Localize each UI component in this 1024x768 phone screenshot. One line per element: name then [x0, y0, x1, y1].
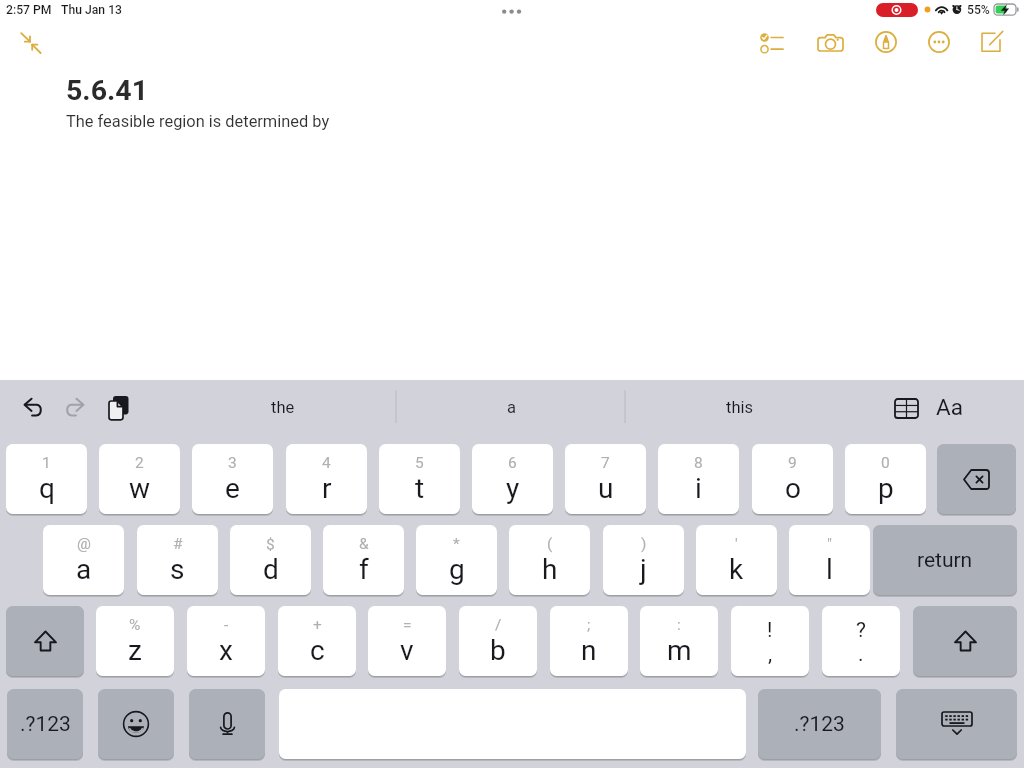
button[interactable]: Redo [59, 390, 90, 424]
button[interactable]: n [550, 606, 628, 676]
staticText: ; [587, 616, 591, 634]
button[interactable]: f [323, 525, 404, 595]
button[interactable]: h [509, 525, 590, 595]
button[interactable]: w [99, 444, 180, 514]
staticText: $ [266, 535, 275, 553]
staticText: t [415, 472, 425, 505]
button[interactable]: Camera [813, 26, 847, 58]
button[interactable]: q [6, 444, 87, 514]
staticText: * [453, 535, 460, 553]
staticText: / [495, 616, 502, 634]
staticText: w [129, 472, 151, 505]
button[interactable]: Dictation [189, 689, 265, 759]
staticText: n [581, 634, 597, 667]
button[interactable]: a [43, 525, 124, 595]
staticText: i [695, 472, 702, 505]
button[interactable]: Text format [928, 390, 970, 424]
button[interactable]: Numbers [7, 689, 83, 759]
button[interactable]: Hide keyboard [896, 689, 1017, 759]
button[interactable]: o [752, 444, 833, 514]
button[interactable]: v [368, 606, 446, 676]
button[interactable]: Emoji [98, 689, 174, 759]
staticText: v [400, 634, 414, 667]
staticText: Aa [936, 394, 963, 420]
staticText: 4 [322, 454, 331, 472]
button[interactable]: Shift [913, 606, 1017, 676]
staticText: The feasible region is determined by [66, 112, 330, 131]
button[interactable]: e [192, 444, 273, 514]
staticText: ? [856, 618, 866, 643]
staticText: l [826, 553, 833, 586]
button[interactable]: r [286, 444, 367, 514]
staticText: d [263, 553, 279, 586]
button[interactable]: Return [873, 525, 1017, 595]
button[interactable]: Collapse [16, 28, 48, 58]
staticText: z [128, 634, 142, 667]
staticText: b [490, 634, 506, 667]
button[interactable]: the [168, 383, 397, 431]
staticText: @ [77, 535, 91, 553]
button[interactable]: m [640, 606, 718, 676]
staticText: " [827, 535, 832, 553]
button[interactable]: Checklist [755, 28, 789, 60]
staticText: - [224, 616, 229, 634]
staticText: 5 [415, 454, 424, 472]
staticText: c [310, 634, 325, 667]
staticText: # [173, 535, 183, 553]
button[interactable]: b [459, 606, 537, 676]
button[interactable]: j [603, 525, 684, 595]
staticText: % [129, 616, 141, 634]
button[interactable]: Shift [6, 606, 84, 676]
staticText: u [598, 472, 614, 505]
button[interactable]: this [625, 383, 854, 431]
staticText: = [403, 616, 412, 634]
staticText: h [542, 553, 558, 586]
staticText: Thu Jan 13 [61, 3, 123, 17]
button[interactable]: t [379, 444, 460, 514]
staticText: 2 [135, 454, 144, 472]
button[interactable]: Paste [104, 389, 134, 427]
staticText: g [449, 553, 465, 586]
staticText: e [225, 472, 240, 505]
staticText: 7 [601, 454, 610, 472]
button[interactable]: d [230, 525, 311, 595]
button[interactable]: a [397, 383, 626, 431]
button[interactable]: Numbers [758, 689, 881, 759]
button[interactable]: Undo [17, 390, 48, 424]
button[interactable]: ? . [822, 606, 900, 676]
staticText: f [359, 553, 369, 586]
button[interactable]: i [658, 444, 739, 514]
button[interactable]: New note [976, 26, 1010, 58]
staticText: ! [767, 618, 773, 643]
button[interactable]: Insert table [890, 392, 922, 424]
button[interactable]: s [137, 525, 218, 595]
button[interactable]: y [472, 444, 553, 514]
button[interactable]: Backspace [937, 444, 1016, 514]
button[interactable]: Markup [869, 26, 903, 58]
staticText: , [768, 642, 773, 667]
button[interactable]: Recording [876, 3, 918, 17]
button[interactable]: ! , [731, 606, 809, 676]
staticText: this [726, 398, 754, 417]
staticText: ) [641, 535, 647, 553]
button[interactable]: c [278, 606, 356, 676]
button[interactable]: z [96, 606, 174, 676]
button[interactable]: p [845, 444, 926, 514]
staticText: ' [735, 535, 738, 553]
staticText: a [76, 553, 92, 586]
button[interactable]: k [696, 525, 777, 595]
staticText: k [729, 553, 744, 586]
staticText: . [858, 642, 864, 667]
staticText: : [677, 616, 681, 634]
staticText: 0 [881, 454, 890, 472]
staticText: m [667, 634, 692, 667]
button[interactable]: u [565, 444, 646, 514]
button[interactable]: More [922, 26, 956, 58]
button[interactable]: g [416, 525, 497, 595]
staticText: a [507, 398, 516, 417]
staticText: ( [547, 535, 553, 553]
staticText: x [219, 634, 233, 667]
button[interactable]: x [187, 606, 265, 676]
button[interactable]: l [789, 525, 870, 595]
